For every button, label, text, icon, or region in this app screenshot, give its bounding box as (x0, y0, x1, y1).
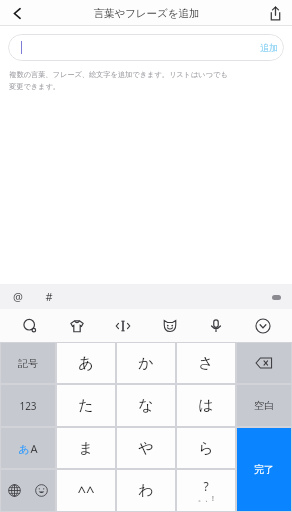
staticText: は (198, 396, 214, 415)
button[interactable]: ? (177, 470, 235, 511)
staticText: 。、! (198, 494, 214, 504)
staticText: わ (138, 481, 154, 500)
staticText: # (45, 289, 53, 304)
button[interactable]: Voice input (199, 309, 232, 342)
button[interactable]: Search (13, 309, 46, 342)
button[interactable]: Collapse (246, 309, 279, 342)
button[interactable]: @ (9, 287, 27, 306)
button[interactable]: Delete (237, 343, 291, 383)
button[interactable]: 空白 (237, 385, 291, 426)
button[interactable]: 記号 (1, 343, 55, 383)
button[interactable]: Emoji (153, 309, 186, 342)
button[interactable]: 123 (1, 385, 55, 426)
staticText: 追加 (260, 42, 278, 53)
button[interactable]: Change keyboard (1, 470, 28, 511)
button[interactable]: や (117, 428, 175, 468)
button[interactable]: た (57, 385, 115, 426)
button[interactable]: ま (57, 428, 115, 468)
staticText: 123 (19, 399, 37, 413)
button[interactable]: 追加 (8, 34, 284, 61)
staticText: @ (13, 289, 23, 304)
button[interactable]: は (177, 385, 235, 426)
button[interactable]: あ (57, 343, 115, 383)
button[interactable]: Move cursor (106, 309, 139, 342)
staticText: 変更できます。 (9, 82, 60, 91)
button[interactable]: Emoji (28, 470, 55, 511)
staticText: あ (78, 354, 94, 373)
staticText: 言葉やフレーズを追加 (93, 7, 200, 20)
staticText: ? (203, 478, 209, 494)
button[interactable]: Stickers (60, 309, 93, 342)
staticText: ^^ (77, 481, 95, 501)
staticText: た (78, 396, 94, 415)
button[interactable]: わ (117, 470, 175, 511)
button[interactable]: な (117, 385, 175, 426)
button[interactable]: Back (0, 0, 34, 26)
button[interactable]: 完了 (237, 428, 291, 511)
staticText: や (138, 439, 154, 458)
button[interactable]: か (117, 343, 175, 383)
staticText: ま (78, 439, 94, 458)
staticText: 完了 (254, 463, 274, 476)
button[interactable]: # (41, 287, 57, 306)
staticText: か (138, 354, 154, 373)
staticText: 複数の言葉、フレーズ、絵文字を追加できます。リストはいつでも (9, 70, 228, 79)
staticText: さ (198, 354, 214, 373)
staticText: 記号 (18, 357, 38, 370)
button[interactable]: ら (177, 428, 235, 468)
staticText: 空白 (254, 399, 274, 412)
button[interactable]: さ (177, 343, 235, 383)
button[interactable]: Share (258, 0, 292, 26)
button[interactable]: Expand suggestions (270, 291, 282, 303)
staticText: な (138, 396, 154, 415)
button[interactable]: 追加 (260, 42, 278, 53)
staticText: A (30, 441, 38, 456)
staticText: ら (198, 439, 214, 458)
button[interactable]: ^^ (57, 470, 115, 511)
button[interactable]: あ (1, 428, 55, 468)
staticText: あ (18, 442, 30, 456)
